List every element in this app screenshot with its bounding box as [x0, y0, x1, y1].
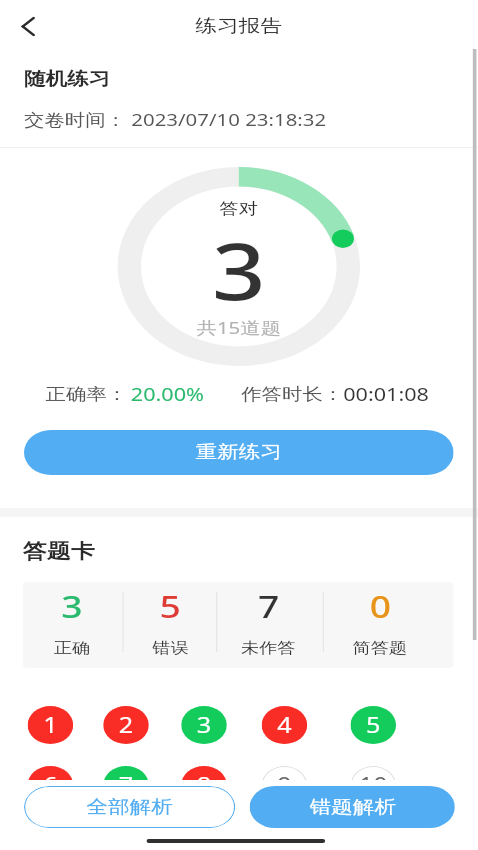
button[interactable]: 5	[122, 582, 218, 668]
button[interactable]: 7	[103, 766, 149, 804]
staticText: 00:01:08	[343, 382, 430, 407]
button[interactable]: 6	[28, 766, 73, 804]
staticText: 20.00%	[131, 382, 204, 407]
button[interactable]: 9	[262, 766, 307, 804]
button[interactable]: 错题解析	[250, 786, 455, 828]
staticText: 1	[43, 711, 59, 740]
staticText: 10	[359, 771, 389, 800]
staticText: 0	[370, 585, 391, 627]
staticText: 正确率：	[46, 384, 127, 405]
staticText: 全部解析	[86, 796, 173, 819]
staticText: 3	[61, 585, 83, 627]
button[interactable]: 5	[350, 706, 396, 744]
button[interactable]: 全部解析	[24, 786, 235, 828]
staticText: 7	[258, 585, 280, 627]
staticText: 2	[119, 711, 134, 740]
staticText: 练习报告	[0, 15, 478, 38]
button[interactable]: 重新练习	[24, 430, 454, 475]
staticText: 4	[277, 711, 293, 740]
button[interactable]: 1	[28, 706, 73, 744]
button[interactable]: 7	[220, 582, 316, 668]
staticText: 3	[0, 217, 478, 323]
staticText: 作答时长：	[241, 384, 343, 405]
staticText: 6	[43, 771, 59, 800]
staticText: 错题解析	[310, 796, 396, 819]
button[interactable]: 8	[181, 766, 227, 804]
button[interactable]: 0	[331, 582, 427, 668]
staticText: 随机练习	[24, 68, 110, 91]
button[interactable]: 3	[181, 706, 227, 744]
staticText: 8	[197, 771, 212, 800]
staticText: 答对	[0, 199, 478, 219]
button[interactable]: 3	[24, 582, 120, 668]
button[interactable]: 2	[103, 706, 149, 744]
staticText: 3	[197, 711, 212, 740]
staticText: 5	[366, 711, 382, 740]
staticText: 7	[119, 771, 134, 800]
button[interactable]: 4	[262, 706, 307, 744]
staticText: 重新练习	[196, 441, 282, 464]
staticText: 9	[277, 771, 293, 800]
staticText: 错误	[152, 639, 188, 658]
staticText: 共15道题	[0, 316, 478, 339]
staticText: 未作答	[241, 639, 295, 658]
staticText: 交卷时间： 2023/07/10 23:18:32	[24, 108, 326, 131]
staticText: 简答题	[353, 639, 407, 658]
button[interactable]: 10	[350, 766, 396, 804]
staticText: 正确	[54, 639, 90, 658]
button[interactable]: Back	[4, 6, 52, 46]
staticText: 5	[160, 585, 181, 627]
staticText: 答题卡	[23, 539, 95, 564]
